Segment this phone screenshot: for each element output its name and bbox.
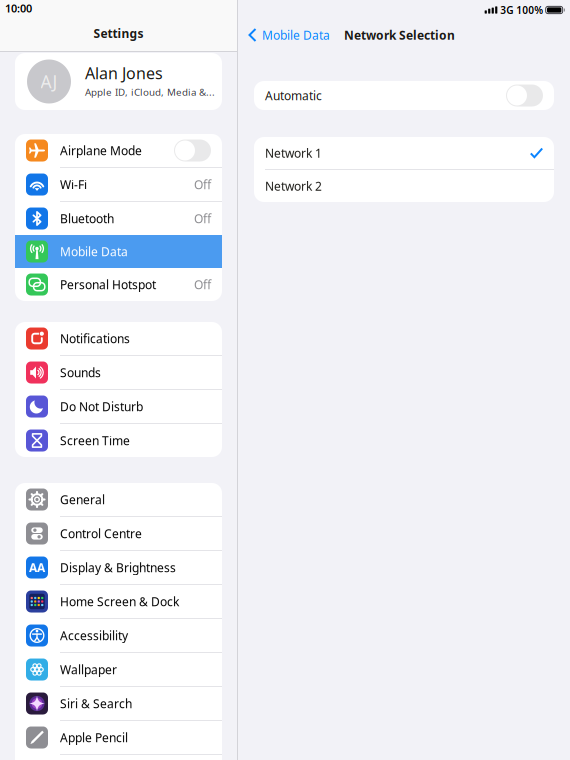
- staticText: Network Selection: [344, 27, 455, 43]
- staticText: Off: [194, 210, 211, 226]
- staticText: Settings: [93, 25, 143, 41]
- staticText: Personal Hotspot: [60, 276, 156, 292]
- staticText: Network 1: [265, 145, 322, 161]
- staticText: Notifications: [60, 330, 130, 346]
- staticText: Mobile Data: [60, 243, 128, 259]
- button[interactable]: AJ: [15, 53, 222, 110]
- staticText: Display & Brightness: [60, 559, 176, 575]
- button[interactable]: Network 1: [254, 137, 554, 169]
- button[interactable]: Control Centre: [15, 517, 222, 550]
- staticText: 3G 100%: [500, 3, 543, 17]
- staticText: Apple ID, iCloud, Media &...: [85, 85, 215, 98]
- button[interactable]: AA: [15, 551, 222, 584]
- staticText: Off: [194, 276, 211, 292]
- button[interactable]: Notifications: [15, 322, 222, 355]
- staticText: Apple Pencil: [60, 729, 128, 745]
- button[interactable]: Siri & Search: [15, 687, 222, 720]
- staticText: Accessibility: [60, 627, 128, 643]
- button[interactable]: Network 2: [254, 170, 554, 202]
- staticText: Control Centre: [60, 525, 142, 541]
- button[interactable]: Accessibility: [15, 619, 222, 652]
- button[interactable]: Personal Hotspot: [15, 268, 222, 301]
- staticText: Home Screen & Dock: [60, 593, 179, 609]
- staticText: 10:00: [5, 1, 32, 15]
- button[interactable]: Wi-Fi: [15, 168, 222, 201]
- button[interactable]: Mobile Data: [15, 235, 222, 268]
- staticText: AA: [29, 559, 45, 575]
- button[interactable]: Mobile Data: [238, 22, 336, 48]
- staticText: Bluetooth: [60, 210, 114, 226]
- button[interactable]: Screen Time: [15, 424, 222, 457]
- button[interactable]: Automatic: [254, 81, 554, 110]
- button[interactable]: Wallpaper: [15, 653, 222, 686]
- staticText: Airplane Mode: [60, 142, 142, 158]
- staticText: General: [60, 491, 105, 507]
- staticText: Siri & Search: [60, 695, 132, 711]
- button[interactable]: Airplane Mode: [15, 134, 222, 167]
- staticText: Mobile Data: [262, 27, 330, 43]
- staticText: Wallpaper: [60, 661, 117, 677]
- staticText: Off: [194, 176, 211, 192]
- staticText: Screen Time: [60, 432, 130, 448]
- staticText: AJ: [40, 70, 57, 93]
- button[interactable]: Apple Pencil: [15, 721, 222, 754]
- button[interactable]: Bluetooth: [15, 202, 222, 235]
- staticText: Wi-Fi: [60, 176, 87, 192]
- staticText: Do Not Disturb: [60, 398, 143, 414]
- staticText: Alan Jones: [85, 62, 163, 84]
- staticText: Network 2: [265, 178, 322, 194]
- button[interactable]: Sounds: [15, 356, 222, 389]
- staticText: Automatic: [265, 87, 322, 103]
- button[interactable]: Do Not Disturb: [15, 390, 222, 423]
- button[interactable]: Home Screen & Dock: [15, 585, 222, 618]
- button[interactable]: General: [15, 483, 222, 516]
- staticText: Sounds: [60, 364, 101, 380]
